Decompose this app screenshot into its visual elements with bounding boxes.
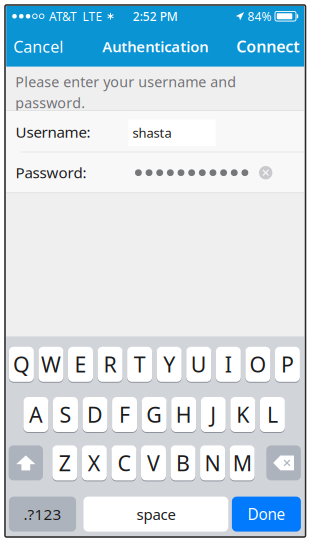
staticText: N — [205, 448, 221, 477]
button[interactable]: Done — [232, 497, 301, 532]
staticText: G — [146, 400, 162, 429]
button[interactable]: Q — [9, 347, 34, 383]
button[interactable]: F — [112, 397, 137, 433]
staticText: Please enter your username and — [15, 72, 236, 91]
button[interactable]: Connect — [231, 26, 304, 66]
staticText: 2:52 PM — [133, 8, 178, 24]
staticText: I — [225, 350, 232, 379]
staticText: 84% — [247, 8, 271, 24]
button[interactable]: J — [201, 397, 226, 433]
staticText: Done — [247, 504, 285, 525]
button[interactable]: Z — [52, 445, 77, 481]
staticText: shasta — [133, 124, 172, 141]
button[interactable]: H — [171, 397, 196, 433]
button[interactable]: M — [230, 445, 255, 481]
button[interactable]: V — [141, 445, 166, 481]
button[interactable]: Shift — [9, 445, 43, 480]
staticText: Username: — [15, 122, 90, 142]
staticText: D — [87, 400, 103, 429]
button[interactable]: A — [23, 397, 48, 433]
button[interactable]: L — [260, 397, 285, 433]
button[interactable]: B — [170, 445, 195, 481]
staticText: Z — [59, 448, 71, 477]
staticText: O — [249, 350, 266, 379]
button[interactable]: R — [98, 347, 123, 383]
staticText: F — [119, 400, 130, 429]
button[interactable]: Delete — [266, 445, 301, 480]
button[interactable]: N — [200, 445, 225, 481]
staticText: A — [29, 400, 43, 429]
button[interactable]: space — [83, 497, 228, 532]
button[interactable]: P — [275, 347, 300, 383]
staticText: Connect — [236, 35, 299, 57]
staticText: X — [88, 448, 101, 477]
staticText: Cancel — [13, 35, 63, 57]
button[interactable]: T — [127, 347, 152, 383]
staticText: U — [191, 350, 207, 379]
staticText: T — [134, 350, 146, 379]
button[interactable]: .?123 — [9, 497, 76, 532]
button[interactable]: Y — [157, 347, 182, 383]
button[interactable]: X — [82, 445, 107, 481]
staticText: J — [210, 400, 216, 429]
button[interactable]: U — [186, 347, 211, 383]
button[interactable]: E — [68, 347, 93, 383]
button[interactable]: G — [142, 397, 167, 433]
staticText: V — [147, 448, 160, 477]
button[interactable]: K — [230, 397, 255, 433]
button[interactable]: W — [38, 347, 63, 383]
button[interactable]: Clear password — [255, 162, 277, 184]
staticText: S — [59, 400, 71, 429]
staticText: L — [267, 400, 278, 429]
button[interactable]: I — [216, 347, 241, 383]
button[interactable]: Username field — [128, 119, 216, 146]
staticText: C — [117, 448, 130, 477]
staticText: E — [74, 350, 86, 379]
staticText: Q — [13, 350, 30, 379]
staticText: Password: — [15, 162, 86, 183]
staticText: Y — [163, 350, 175, 379]
staticText: B — [176, 448, 190, 477]
button[interactable]: S — [53, 397, 78, 433]
staticText: password. — [15, 93, 85, 112]
staticText: K — [236, 400, 249, 429]
staticText: LTE — [82, 8, 102, 24]
staticText: AT&T — [49, 8, 77, 24]
staticText: P — [281, 350, 294, 379]
staticText: R — [104, 350, 117, 379]
staticText: Authentication — [102, 36, 208, 56]
staticText: H — [176, 400, 192, 429]
button[interactable]: Cancel — [6, 26, 70, 66]
staticText: M — [233, 448, 252, 477]
button[interactable]: O — [245, 347, 270, 383]
staticText: W — [41, 350, 61, 379]
button[interactable]: C — [111, 445, 136, 481]
button[interactable]: D — [82, 397, 107, 433]
staticText: space — [136, 504, 175, 524]
staticText: .?123 — [23, 504, 61, 524]
